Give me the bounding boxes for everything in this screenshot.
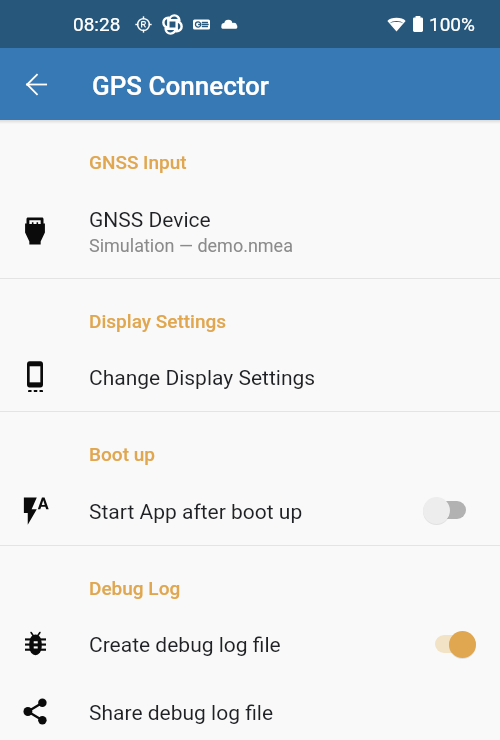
button[interactable]: GNSS Device [0, 186, 500, 278]
button[interactable]: Toggle on [419, 624, 481, 664]
button[interactable]: Change Display Settings [0, 345, 500, 411]
staticText: GNSS Input [89, 151, 187, 173]
staticText: GNSS Device [89, 208, 211, 233]
staticText: Boot up [89, 443, 155, 465]
staticText: Simulation — demo.nmea [89, 235, 293, 256]
staticText: Start App after boot up [89, 500, 303, 525]
staticText: 100% [429, 13, 475, 35]
staticText: 08:28 [73, 13, 121, 35]
button[interactable]: Back [8, 56, 64, 112]
staticText: Debug Log [89, 577, 181, 599]
staticText: Create debug log file [89, 633, 281, 658]
staticText: Share debug log file [89, 701, 274, 726]
button[interactable]: Toggle off [419, 490, 481, 530]
button[interactable]: Share debug log file [0, 679, 500, 740]
staticText: Change Display Settings [89, 366, 316, 391]
staticText: GPS Connector [92, 71, 270, 101]
button[interactable]: Create debug log file [0, 612, 500, 679]
staticText: Display Settings [89, 310, 227, 332]
button[interactable]: Start App after boot up [0, 478, 500, 545]
